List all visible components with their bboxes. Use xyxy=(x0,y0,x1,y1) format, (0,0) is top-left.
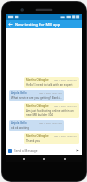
button[interactable]: Back xyxy=(6,20,15,28)
staticText: Mar 1 2021 10:47 AM xyxy=(39,122,62,125)
staticText: Mar 1 2021 10:44 AM xyxy=(54,105,77,108)
staticText: Martha Okhagbe xyxy=(26,134,49,138)
button[interactable]: Home xyxy=(41,156,47,162)
staticText: Thank you xyxy=(26,139,41,143)
button[interactable]: Martha Okhagbe xyxy=(24,103,79,118)
button[interactable]: Anjola Bello xyxy=(9,90,64,101)
staticText: Anjola Bello xyxy=(11,121,27,125)
button[interactable]: Attach file xyxy=(8,149,12,153)
button[interactable]: Send xyxy=(75,148,80,153)
staticText: Mar 1 2021 10:40 AM xyxy=(54,79,77,82)
button[interactable]: Recent apps xyxy=(62,156,68,162)
staticText: ok ok waiting xyxy=(11,126,30,130)
staticText: What service are you getting? Banking xyxy=(11,96,62,100)
staticText: Am just facilitating online within an ne… xyxy=(26,109,77,117)
staticText: Mar 1 2021 10:41 AM xyxy=(39,92,62,95)
button[interactable]: Martha Okhagbe xyxy=(24,77,79,88)
staticText: Anjola Bello xyxy=(11,91,27,95)
staticText: Send a Message xyxy=(14,149,38,153)
staticText: Martha Okhagbe xyxy=(26,104,49,108)
staticText: Martha Okhagbe xyxy=(26,78,49,82)
staticText: Hello! I need to talk with an expert xyxy=(26,83,73,87)
button[interactable]: Back xyxy=(21,156,27,162)
button[interactable]: Anjola Bello xyxy=(9,120,64,131)
button[interactable]: Martha Okhagbe xyxy=(24,133,79,144)
staticText: New testing for MB app xyxy=(15,22,61,27)
button[interactable]: Send a Message xyxy=(14,146,75,155)
staticText: Mar 1 2021 10:50 AM xyxy=(54,135,77,138)
